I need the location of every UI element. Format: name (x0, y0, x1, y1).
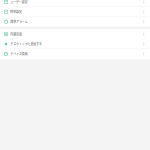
button[interactable]: デスクトップに追加する (0, 39, 150, 49)
staticText: デバイス情報 (10, 52, 28, 56)
button[interactable]: 標準アラーム (0, 17, 150, 27)
staticText: デスクトップに追加する (10, 42, 42, 46)
staticText: 内蔵音量 (10, 32, 22, 36)
staticText: 標準アラーム (10, 20, 28, 24)
button[interactable]: ユーザー設定 (0, 0, 150, 7)
button[interactable]: 時刻設定 (0, 7, 150, 17)
staticText: 時刻設定 (10, 10, 22, 14)
staticText: ユーザー設定 (10, 0, 28, 4)
button[interactable]: 内蔵音量 (0, 29, 150, 39)
button[interactable]: デバイス情報 (0, 49, 150, 59)
